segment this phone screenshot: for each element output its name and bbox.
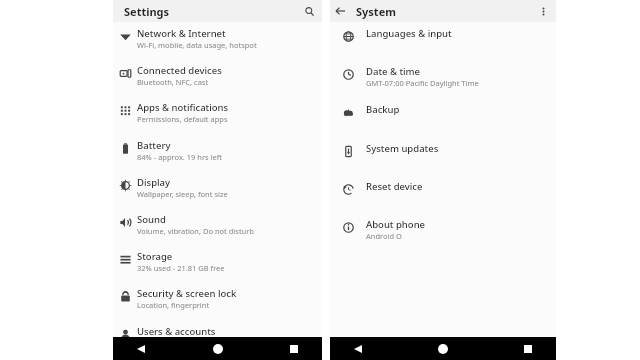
button[interactable]: Apps & notifications <box>113 101 322 138</box>
staticText: Wallpaper, sleep, font size <box>137 189 228 199</box>
button[interactable]: About phone <box>330 218 556 256</box>
staticText: Backup <box>366 103 400 116</box>
staticText: GMT-07:00 Pacific Daylight Time <box>366 78 479 88</box>
staticText: System updates <box>366 142 439 155</box>
staticText: Sound <box>137 213 166 226</box>
staticText: Reset device <box>366 180 423 193</box>
button[interactable]: Backup <box>330 103 556 141</box>
button[interactable]: More options <box>532 0 554 22</box>
button[interactable]: System updates <box>330 142 556 180</box>
button[interactable]: Connected devices <box>113 64 322 101</box>
button[interactable]: Battery <box>113 139 322 176</box>
staticText: 32% used - 21.81 GB free <box>137 263 225 273</box>
staticText: Wi-Fi, mobile, data usage, hotspot <box>137 40 257 50</box>
staticText: Permissions, default apps <box>137 114 228 124</box>
staticText: Volume, vibration, Do not disturb <box>137 226 254 236</box>
button[interactable]: Recents <box>286 341 302 357</box>
button[interactable]: Users & accounts <box>113 325 322 360</box>
staticText: Android O <box>366 231 402 241</box>
staticText: Bluetooth, NFC, cast <box>137 77 209 87</box>
staticText: System <box>356 4 396 19</box>
button[interactable]: Home <box>435 341 451 357</box>
staticText: Apps & notifications <box>137 101 229 114</box>
staticText: Storage <box>137 250 173 263</box>
staticText: Location, fingerprint <box>137 300 210 310</box>
button[interactable]: Languages & input <box>330 27 556 65</box>
button[interactable]: Back <box>133 341 149 357</box>
staticText: About phone <box>366 218 426 231</box>
button[interactable]: Network & Internet <box>113 27 322 64</box>
staticText: Connected devices <box>137 64 222 77</box>
staticText: 84% - approx. 19 hrs left <box>137 152 223 162</box>
staticText: Languages & input <box>366 27 452 40</box>
staticText: Security & screen lock <box>137 287 237 300</box>
button[interactable]: Security & screen lock <box>113 287 322 324</box>
staticText: Settings <box>124 4 170 19</box>
button[interactable]: Search <box>298 0 320 22</box>
staticText: Date & time <box>366 65 421 78</box>
button[interactable]: Display <box>113 176 322 213</box>
button[interactable]: Reset device <box>330 180 556 218</box>
button[interactable]: Storage <box>113 250 322 287</box>
button[interactable]: Back <box>350 341 366 357</box>
button[interactable]: Sound <box>113 213 322 250</box>
staticText: Network & Internet <box>137 27 226 40</box>
staticText: Battery <box>137 139 171 152</box>
staticText: Users & accounts <box>137 325 216 338</box>
button[interactable]: Home <box>210 341 226 357</box>
button[interactable]: Date & time <box>330 65 556 103</box>
button[interactable]: Recents <box>520 341 536 357</box>
staticText: Display <box>137 176 171 189</box>
button[interactable]: Back <box>330 0 350 22</box>
